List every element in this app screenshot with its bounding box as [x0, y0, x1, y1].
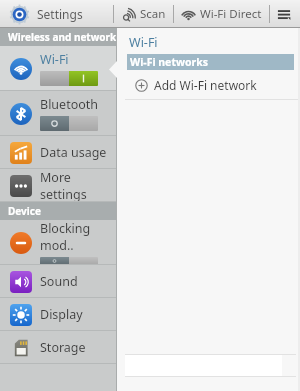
button[interactable]: More options — [276, 6, 292, 22]
button[interactable]: Settings — [10, 5, 29, 24]
button[interactable]: Sound — [0, 265, 117, 298]
button[interactable] — [40, 116, 98, 131]
staticText: Blocking mod.. — [40, 220, 117, 254]
staticText: Wi-Fi networks — [130, 55, 208, 69]
button[interactable]: Wi-Fi networks — [127, 54, 294, 70]
staticText: Wi-Fi — [129, 34, 158, 51]
button[interactable]: Storage — [0, 331, 117, 364]
button[interactable]: Bluetooth — [0, 91, 117, 136]
staticText: More settings — [40, 169, 117, 202]
button[interactable]: Add Wi-Fi network — [117, 70, 300, 100]
staticText: Add Wi-Fi network — [154, 77, 257, 93]
staticText: Wi-Fi Direct — [200, 6, 262, 22]
button[interactable]: Wi-Fi — [0, 46, 117, 91]
button[interactable]: Wi-Fi — [117, 34, 300, 54]
staticText: Sound — [40, 273, 78, 290]
staticText: Bluetooth — [40, 96, 99, 113]
staticText: Storage — [40, 339, 86, 356]
button[interactable]: Scan — [121, 6, 166, 22]
staticText: Wireless and network — [8, 30, 117, 44]
staticText: Display — [40, 306, 83, 323]
staticText: Device — [8, 204, 41, 218]
button[interactable]: More settings — [0, 169, 117, 202]
staticText: Settings — [37, 6, 83, 22]
button[interactable]: Data usage — [0, 136, 117, 169]
staticText: Wi-Fi — [40, 51, 69, 68]
button[interactable] — [40, 257, 98, 265]
staticText: Scan — [140, 6, 166, 22]
button[interactable]: Blocking mod.. — [0, 220, 117, 265]
button[interactable]: Display — [0, 298, 117, 331]
button[interactable] — [40, 71, 98, 86]
button[interactable]: Wi-Fi Direct — [181, 6, 262, 22]
staticText: Data usage — [40, 144, 107, 161]
